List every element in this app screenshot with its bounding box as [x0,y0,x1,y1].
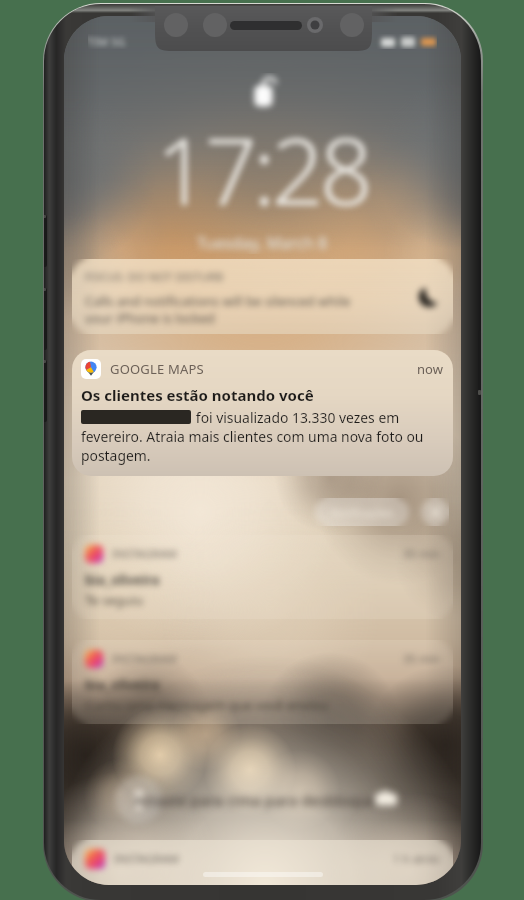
staticText: Te seguiu [85,591,144,609]
staticText: 17:28 [156,107,369,232]
staticText: GOOGLE MAPS [110,360,204,378]
staticText: 1 h atrás [393,851,440,867]
staticText: INSTAGRAM [112,546,177,562]
staticText: bia_oliveira [85,676,160,694]
staticText: Arraste para cima para desbloquear [134,790,392,810]
staticText: Notificações [330,505,394,520]
staticText: 35 min [403,651,440,667]
staticText: Calls and notifications will be silenced… [85,292,351,324]
staticText: INSTAGRAM [112,651,177,667]
staticText: Os clientes estão notando você [81,385,314,405]
staticText: Tuesday, March 8 [197,232,328,254]
button[interactable]: Flashlight [115,776,162,823]
staticText: now [417,360,443,378]
button[interactable]: Clear all notifications [421,498,449,526]
staticText: FOCUS: DO NOT DISTURB [85,269,224,285]
staticText: 35 min [403,546,440,562]
button[interactable]: Camera [369,782,403,816]
staticText: INSTAGRAM [114,851,179,867]
button[interactable]: GOOGLE MAPS [72,350,453,476]
staticText: bia_oliveira [85,571,160,589]
staticText: TIM 5G [88,34,126,49]
staticText: foi visualizado 13.330 vezes em fevereir… [81,408,443,465]
staticText: Curtiu uma mensagem que você enviou [85,696,329,714]
button[interactable]: Notificações [315,498,409,526]
